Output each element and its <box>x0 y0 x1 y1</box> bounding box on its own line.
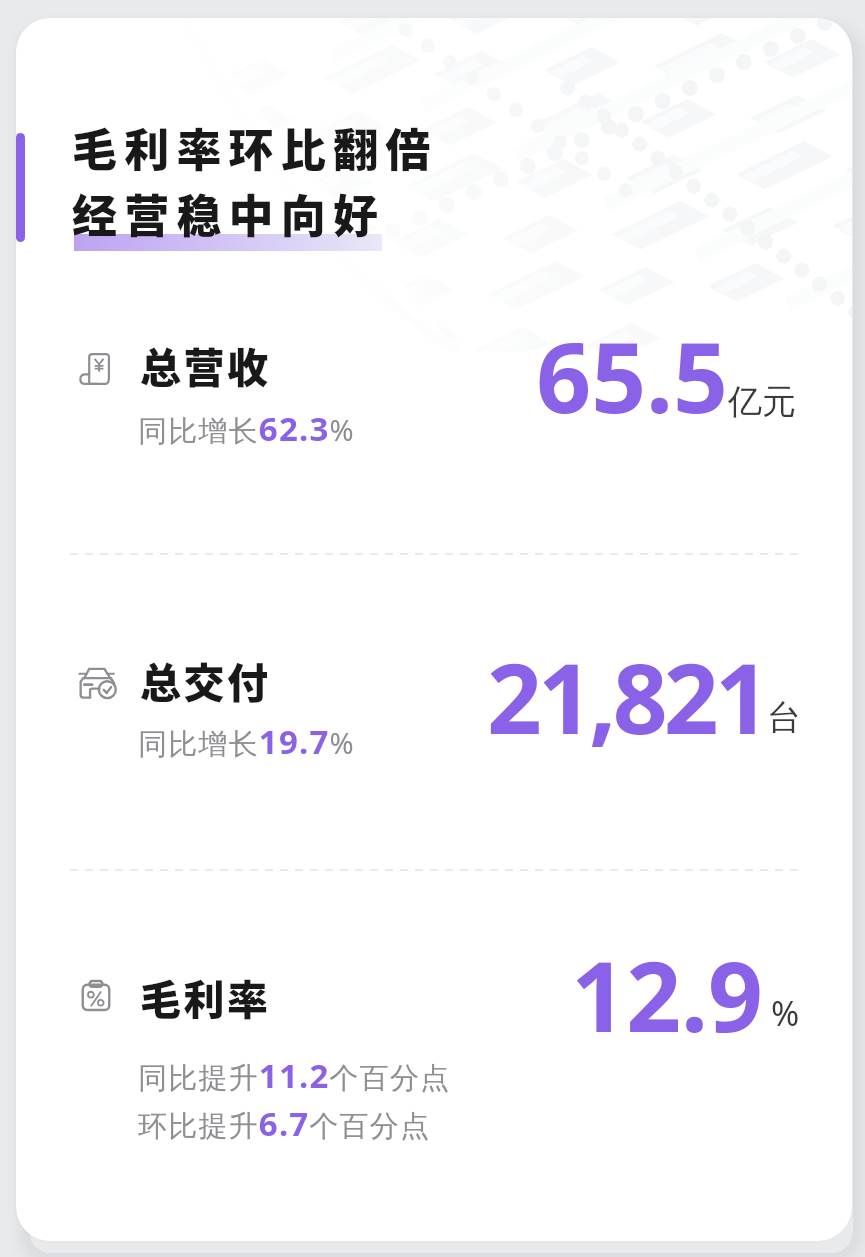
button[interactable]: Gross margin <box>16 945 852 1215</box>
staticText: 台 <box>767 696 801 739</box>
other: Total revenue <box>79 352 113 388</box>
staticText: 亿元 <box>728 380 796 423</box>
staticText: 12.9 <box>16 929 763 1060</box>
staticText: 环比提升6.7个百分点 <box>138 1101 431 1146</box>
staticText: 毛利率环比翻倍 <box>72 115 438 180</box>
staticText: 同比增长19.7% <box>138 719 355 764</box>
button[interactable]: Total deliveries <box>16 633 852 869</box>
other: Total deliveries <box>79 667 120 703</box>
staticText: 总营收 <box>140 335 271 394</box>
staticText: 65.5 <box>16 310 728 441</box>
staticText: 同比提升11.2个百分点 <box>138 1053 451 1098</box>
staticText: % <box>771 990 800 1036</box>
staticText: 21,821 <box>16 631 766 762</box>
staticText: 毛利率 <box>140 967 271 1026</box>
staticText: 经营稳中向好 <box>72 181 386 246</box>
other: Gross margin <box>79 979 113 1015</box>
button[interactable]: Total revenue <box>16 318 852 554</box>
other: Factory campus illustration <box>16 18 852 1241</box>
staticText: 总交付 <box>140 650 271 709</box>
staticText: 同比增长62.3% <box>138 406 355 451</box>
